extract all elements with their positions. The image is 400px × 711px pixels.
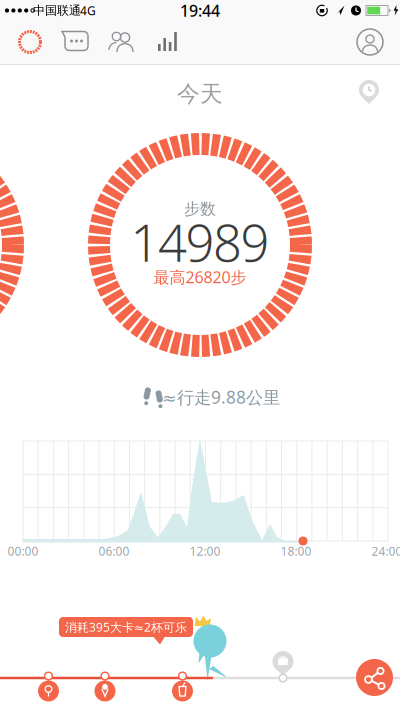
staticText: 最高26820步 <box>153 266 246 288</box>
button[interactable]: 分享 <box>356 659 393 696</box>
staticText: 中国联通 <box>33 3 81 18</box>
staticText: 12:00 <box>189 543 220 559</box>
staticText: ≈行走9.88公里 <box>162 385 280 408</box>
staticText: 消耗395大卡≈2杯可乐 <box>65 619 187 635</box>
button[interactable]: 好友 <box>108 31 136 53</box>
staticText: 14989 <box>130 208 269 276</box>
staticText: 19:44 <box>180 0 220 21</box>
staticText: 06:00 <box>98 543 129 559</box>
staticText: 今天 <box>177 80 223 108</box>
staticText: 00:00 <box>7 543 38 559</box>
staticText: 4G <box>80 2 96 18</box>
button[interactable]: 消息 <box>61 30 91 54</box>
button[interactable]: 我的 <box>356 28 384 56</box>
button[interactable]: 奖励 <box>171 672 193 702</box>
staticText: 18:00 <box>280 543 311 559</box>
staticText: 步数 <box>184 199 216 219</box>
button[interactable]: 奖励 <box>37 672 59 702</box>
button[interactable]: 下一个奖励 <box>272 650 294 682</box>
button[interactable]: 统计 <box>158 32 178 52</box>
staticText: 24:00 <box>371 543 400 559</box>
button[interactable]: 历史记录 <box>358 80 380 104</box>
button[interactable]: 奖励 <box>94 672 116 702</box>
button[interactable]: 计步 <box>16 28 44 56</box>
